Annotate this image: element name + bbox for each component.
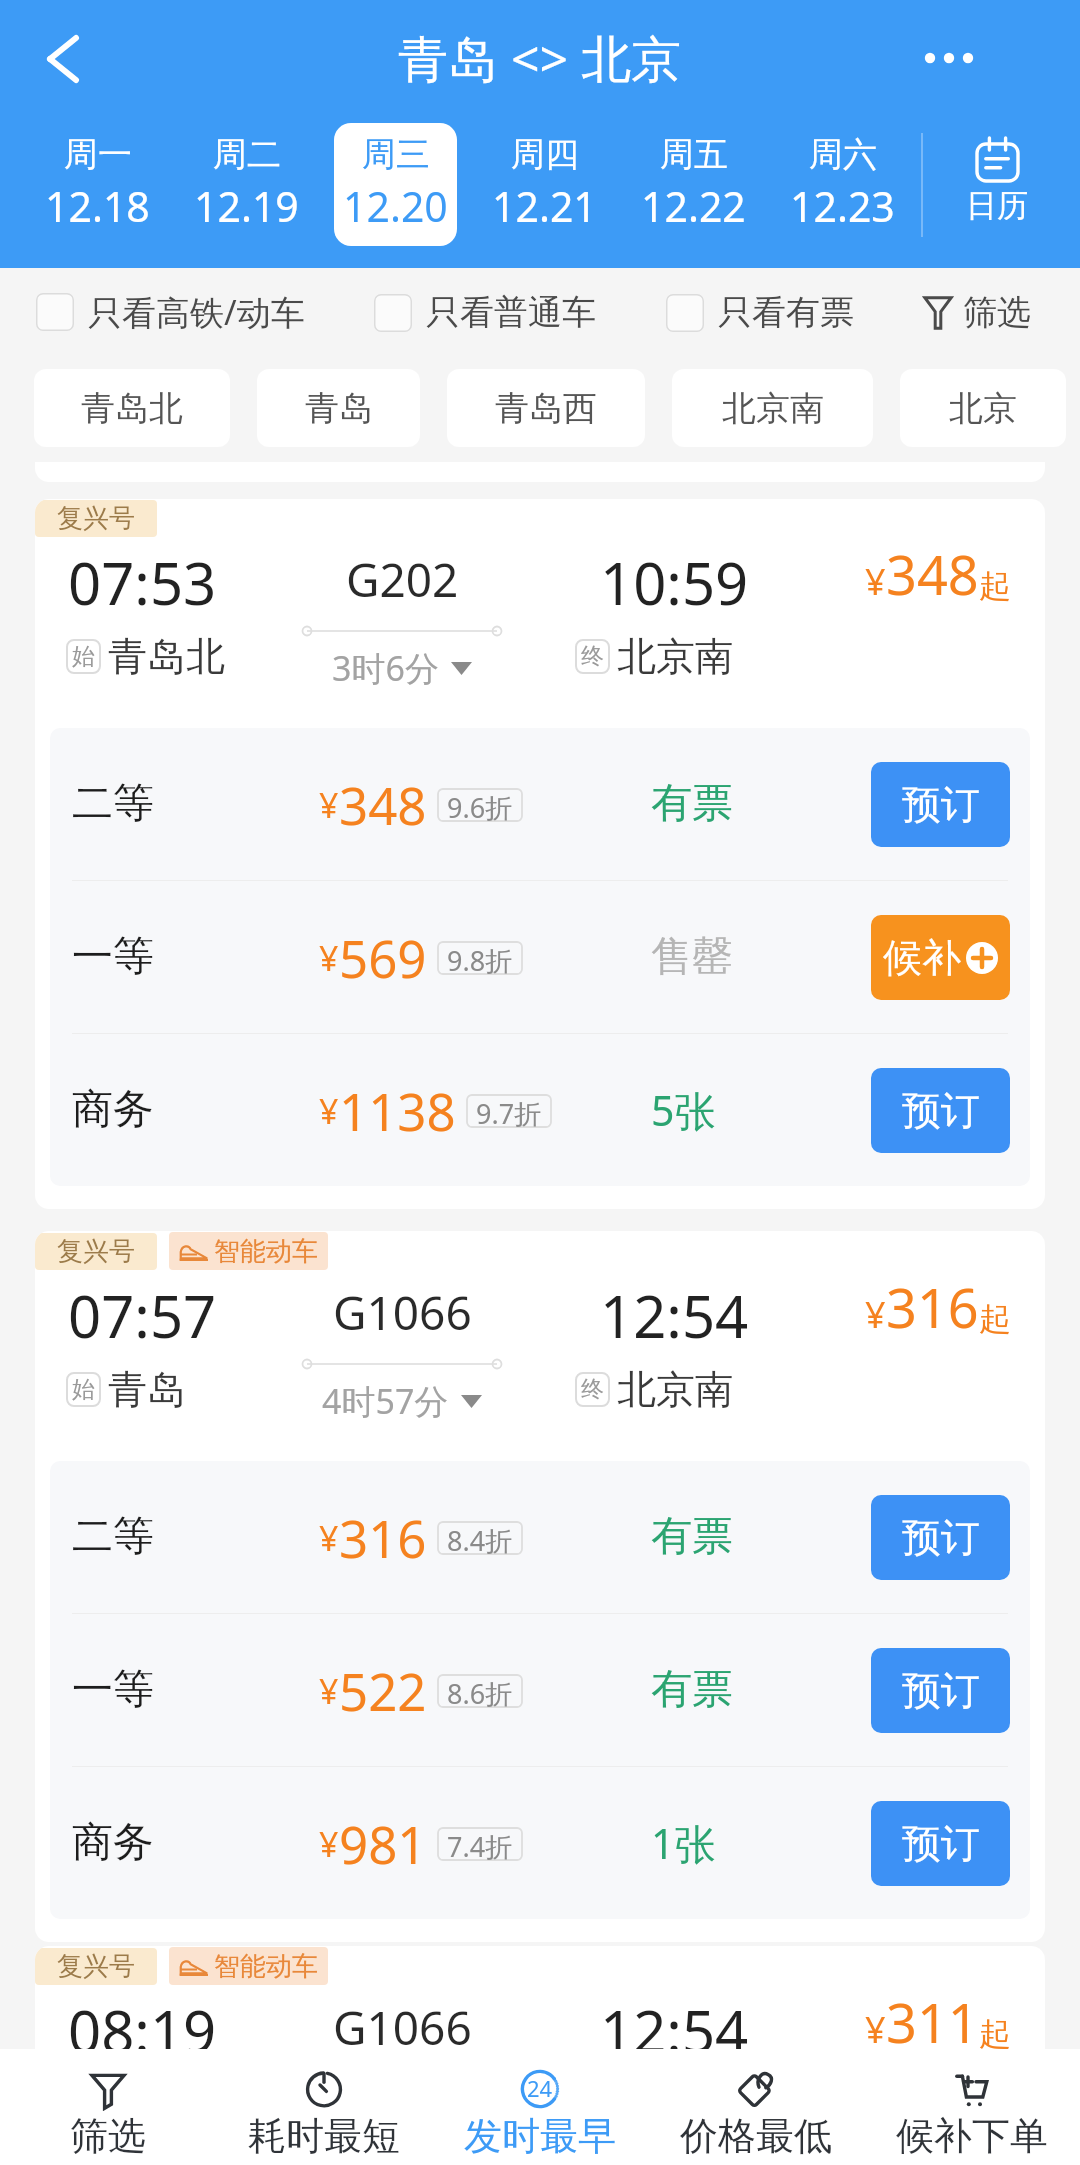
- staticText: 348: [886, 537, 979, 611]
- staticText: 周一: [64, 133, 132, 176]
- staticText: 12.23: [790, 178, 895, 234]
- button[interactable]: 青岛: [257, 369, 420, 447]
- button[interactable]: 预订: [871, 1068, 1010, 1153]
- staticText: 348: [339, 770, 427, 839]
- staticText: 9.6折: [447, 789, 513, 821]
- staticText: 复兴号: [57, 1235, 135, 1268]
- button[interactable]: Calendar: [923, 101, 1071, 268]
- button[interactable]: 一等: [50, 1614, 1030, 1766]
- staticText: 智能动车: [214, 1950, 318, 1983]
- staticText: 12.22: [641, 178, 746, 234]
- staticText: 24: [527, 2073, 553, 2103]
- button[interactable]: 复兴号: [35, 1231, 1045, 1942]
- staticText: 青岛: [108, 1365, 186, 1414]
- staticText: ¥: [865, 557, 886, 606]
- button[interactable]: 一等: [50, 881, 1030, 1033]
- button[interactable]: 耗时最短: [216, 2049, 432, 2165]
- staticText: 有票: [651, 1664, 733, 1716]
- button[interactable]: 商务: [50, 1767, 1030, 1919]
- button[interactable]: 筛选: [0, 2049, 216, 2165]
- staticText: 起: [979, 566, 1011, 606]
- button[interactable]: 北京: [900, 369, 1066, 447]
- staticText: 8.6折: [447, 1675, 513, 1707]
- staticText: 08:19: [68, 1991, 217, 2070]
- staticText: ¥: [319, 1515, 339, 1561]
- staticText: 青岛 <> 北京: [398, 24, 682, 92]
- button[interactable]: 复兴号: [35, 499, 1045, 1209]
- button[interactable]: 北京南: [672, 369, 873, 447]
- button[interactable]: 周四: [470, 101, 619, 268]
- staticText: 候补下单: [896, 2112, 1048, 2160]
- staticText: 北京南: [617, 1365, 734, 1414]
- staticText: 12:54: [600, 1276, 749, 1355]
- staticText: 青岛: [305, 387, 373, 430]
- staticText: 有票: [651, 778, 733, 830]
- staticText: 311: [886, 1985, 979, 2059]
- staticText: 北京南: [617, 632, 734, 681]
- staticText: 终: [581, 1375, 604, 1404]
- button[interactable]: More options: [914, 16, 984, 86]
- button[interactable]: 预订: [871, 1648, 1010, 1733]
- button[interactable]: 周三: [321, 101, 470, 268]
- button[interactable]: 预订: [871, 762, 1010, 847]
- staticText: 569: [339, 923, 427, 992]
- staticText: 青岛北: [81, 387, 183, 430]
- staticText: 一等: [72, 1664, 154, 1716]
- button[interactable]: 筛选: [924, 291, 1031, 334]
- staticText: 周五: [660, 133, 728, 176]
- button[interactable]: 二等: [50, 1461, 1030, 1613]
- button[interactable]: 商务: [50, 1034, 1030, 1186]
- button[interactable]: 周一: [23, 101, 172, 268]
- staticText: 日历: [966, 186, 1028, 225]
- staticText: 周六: [809, 133, 877, 176]
- staticText: 12:54: [600, 1991, 749, 2070]
- button[interactable]: 复兴号: [35, 1946, 1045, 2110]
- staticText: 筛选: [963, 291, 1031, 334]
- staticText: 预订: [902, 780, 980, 829]
- button[interactable]: 周五: [619, 101, 768, 268]
- staticText: 981: [339, 1809, 427, 1878]
- staticText: 7.4折: [447, 1828, 513, 1860]
- button[interactable]: 二等: [50, 728, 1030, 880]
- staticText: 预订: [902, 1086, 980, 1135]
- staticText: 二等: [72, 1511, 154, 1563]
- staticText: 价格最低: [680, 2112, 832, 2160]
- staticText: 只看有票: [718, 291, 854, 334]
- staticText: ¥: [319, 935, 339, 981]
- button[interactable]: 24: [432, 2049, 648, 2165]
- staticText: ¥: [319, 782, 339, 828]
- button[interactable]: 周二: [172, 101, 321, 268]
- button[interactable]: 只看普通车: [374, 291, 596, 334]
- button[interactable]: 预订: [871, 1801, 1010, 1886]
- staticText: 始: [72, 1375, 95, 1404]
- staticText: 1138: [339, 1076, 456, 1145]
- staticText: 预订: [902, 1513, 980, 1562]
- staticText: 周四: [511, 133, 579, 176]
- staticText: G1066: [333, 1281, 472, 1344]
- staticText: 3时6分: [332, 645, 439, 691]
- staticText: 只看高铁/动车: [88, 289, 305, 335]
- staticText: 9.7折: [476, 1095, 542, 1127]
- button[interactable]: 候补下单: [864, 2049, 1080, 2165]
- button[interactable]: 候补: [871, 915, 1010, 1000]
- staticText: 07:53: [68, 543, 217, 622]
- button[interactable]: 青岛北: [34, 369, 230, 447]
- button[interactable]: 周六: [768, 101, 917, 268]
- button[interactable]: Back: [28, 16, 98, 86]
- button[interactable]: 只看高铁/动车: [36, 289, 305, 335]
- button[interactable]: 只看有票: [666, 291, 854, 334]
- button[interactable]: 青岛西: [447, 369, 645, 447]
- staticText: 周三: [362, 133, 430, 176]
- staticText: 青岛北: [108, 632, 225, 681]
- staticText: 9.8折: [447, 942, 513, 974]
- staticText: 终: [581, 642, 604, 671]
- button[interactable]: 价格最低: [648, 2049, 864, 2165]
- staticText: 522: [339, 1656, 427, 1725]
- staticText: 316: [886, 1270, 979, 1344]
- button[interactable]: 预订: [871, 1495, 1010, 1580]
- staticText: 商务: [72, 1817, 154, 1869]
- staticText: ¥: [319, 1668, 339, 1714]
